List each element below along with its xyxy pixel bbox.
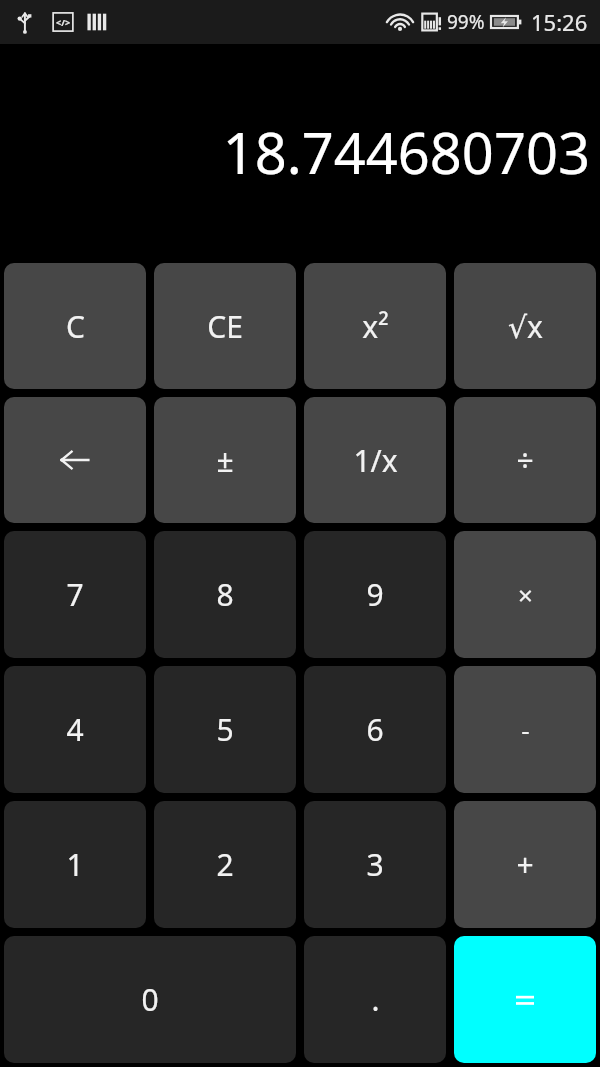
button[interactable]: Equals — [454, 936, 596, 1063]
button[interactable]: 0 — [4, 936, 296, 1063]
staticText: × — [518, 577, 533, 612]
staticText: x² — [362, 306, 389, 347]
button[interactable]: 5 — [154, 666, 296, 793]
staticText: 15:26 — [531, 7, 588, 37]
staticText: ÷ — [516, 440, 534, 481]
staticText: 8 — [216, 574, 234, 615]
button[interactable]: x² — [304, 263, 446, 389]
staticText: ± — [216, 440, 234, 481]
staticText: 9 — [366, 574, 384, 615]
staticText: 6 — [366, 709, 384, 750]
staticText: CE — [207, 306, 243, 347]
button[interactable]: 4 — [4, 666, 146, 793]
staticText: 2 — [216, 844, 234, 885]
staticText: . — [371, 979, 380, 1020]
staticText: 18.744680703 — [222, 114, 590, 190]
button[interactable]: 1/x — [304, 397, 446, 523]
button[interactable]: ± — [154, 397, 296, 523]
other: Wi-Fi — [386, 10, 414, 34]
button[interactable]: Backspace — [4, 397, 146, 523]
other: USB — [14, 9, 40, 35]
other: SIM card alert — [421, 10, 443, 34]
button[interactable]: + — [454, 801, 596, 928]
button[interactable]: - — [454, 666, 596, 793]
button[interactable]: ÷ — [454, 397, 596, 523]
staticText: 4 — [66, 709, 84, 750]
button[interactable]: 2 — [154, 801, 296, 928]
button[interactable]: 9 — [304, 531, 446, 658]
staticText: 7 — [66, 574, 84, 615]
button[interactable]: . — [304, 936, 446, 1063]
staticText: + — [516, 844, 534, 885]
staticText: 0 — [141, 979, 159, 1020]
button[interactable]: √x — [454, 263, 596, 389]
button[interactable]: 3 — [304, 801, 446, 928]
staticText: </> — [56, 16, 71, 28]
button[interactable]: × — [454, 531, 596, 658]
other: Signal bars — [86, 9, 110, 35]
staticText: √x — [508, 306, 543, 347]
other: Battery charging — [491, 12, 523, 32]
button[interactable]: 7 — [4, 531, 146, 658]
button[interactable]: CE — [154, 263, 296, 389]
staticText: 3 — [366, 844, 384, 885]
button[interactable]: 1 — [4, 801, 146, 928]
staticText: C — [66, 306, 85, 347]
staticText: - — [521, 712, 530, 747]
button[interactable]: C — [4, 263, 146, 389]
staticText: 1/x — [353, 440, 398, 481]
staticText: 1 — [66, 844, 84, 885]
staticText: 99% — [447, 9, 485, 35]
button[interactable]: 8 — [154, 531, 296, 658]
other: Developer options — [50, 9, 76, 35]
button[interactable]: 6 — [304, 666, 446, 793]
staticText: 5 — [216, 709, 234, 750]
